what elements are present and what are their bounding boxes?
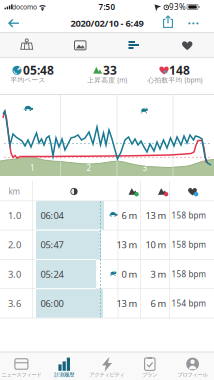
button[interactable]: アクティビティ (86, 352, 128, 380)
staticText: プロフィール (178, 371, 208, 378)
staticText: 2020/02/10 - 6:49 (70, 17, 143, 29)
staticText: 2 (86, 163, 91, 173)
staticText: 上昇高度 (m) (87, 76, 127, 84)
staticText: 3.0 (8, 268, 21, 280)
staticText: 148 (169, 62, 190, 78)
button[interactable]: Heart rate (160, 33, 214, 57)
staticText: docomo (12, 3, 37, 11)
staticText: 93% (169, 1, 186, 12)
staticText: 3 m (150, 268, 166, 280)
button[interactable]: プラン (128, 352, 171, 380)
button[interactable]: Photos (53, 33, 107, 57)
button[interactable]: Map (0, 33, 53, 57)
staticText: 06:04 (40, 209, 63, 222)
staticText: 1 (30, 163, 35, 173)
staticText: 0 m (121, 268, 137, 280)
button[interactable]: 計測履歴 (43, 352, 86, 380)
staticText: 10 m (145, 239, 166, 251)
staticText: 3.6 (8, 297, 21, 310)
button[interactable]: プロフィール (171, 352, 214, 380)
staticText: 計測履歴 (54, 371, 74, 378)
staticText: 158 bpm (171, 269, 205, 279)
staticText: プラン (142, 371, 157, 378)
staticText: 7:50 (98, 1, 115, 12)
button[interactable]: Back (0, 14, 30, 32)
staticText: アクティビティ (89, 371, 124, 378)
staticText: 3 (142, 163, 147, 173)
staticText: 158 bpm (171, 210, 205, 221)
staticText: 2.0 (8, 239, 21, 251)
staticText: 05:47 (40, 239, 63, 251)
staticText: 13 m (145, 209, 166, 222)
staticText: 13 m (116, 297, 137, 310)
staticText: 158 bpm (171, 239, 205, 250)
staticText: 平均ペース (10, 76, 45, 84)
button[interactable]: ニュースフィード (0, 352, 43, 380)
staticText: km (8, 186, 19, 197)
staticText: 6 m (150, 297, 166, 310)
button[interactable]: More (182, 14, 206, 32)
staticText: 154 bpm (171, 298, 205, 309)
staticText: 13 m (116, 239, 137, 251)
button[interactable]: Share (155, 14, 181, 32)
staticText: 05:48 (23, 62, 54, 78)
staticText: 1.0 (8, 209, 21, 222)
button[interactable]: Splits (107, 33, 160, 57)
staticText: 33 (103, 62, 117, 78)
staticText: ニュースフィード (1, 371, 41, 378)
staticText: 05:24 (40, 268, 63, 280)
staticText: 06:00 (40, 297, 63, 310)
staticText: 6 m (121, 209, 137, 222)
staticText: 心拍数平均 (bpm) (147, 76, 202, 84)
